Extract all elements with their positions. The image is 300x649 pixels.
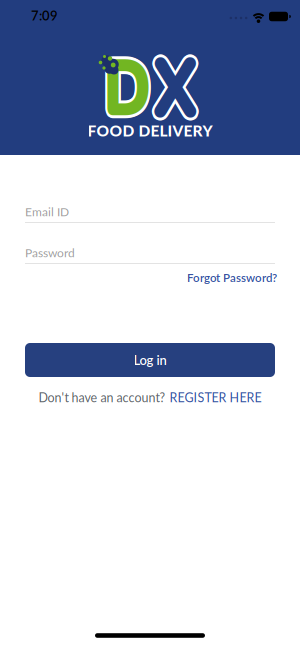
staticText: D: [98, 37, 161, 146]
button[interactable]: Forgot Password?: [187, 271, 277, 284]
staticText: D: [96, 34, 159, 143]
staticText: X: [148, 31, 206, 144]
staticText: X: [146, 36, 204, 150]
button[interactable]: Log in: [25, 343, 275, 377]
staticText: X: [143, 33, 201, 147]
staticText: REGISTER HERE: [169, 390, 261, 405]
staticText: D: [96, 31, 159, 140]
staticText: Forgot Password?: [187, 271, 277, 284]
staticText: D: [94, 37, 157, 146]
staticText: D: [98, 32, 161, 141]
staticText: D: [96, 37, 159, 146]
staticText: Log in: [133, 352, 166, 368]
button[interactable]: REGISTER HERE: [169, 390, 261, 405]
staticText: FOOD DELIVERY: [87, 121, 212, 140]
staticText: Don't have an account?: [38, 390, 165, 405]
staticText: X: [149, 33, 207, 147]
staticText: X: [144, 31, 202, 144]
staticText: D: [93, 34, 156, 143]
staticText: 7:09: [31, 8, 58, 23]
staticText: D: [94, 32, 157, 141]
staticText: Password: [25, 245, 75, 260]
staticText: Email ID: [25, 204, 69, 219]
staticText: D: [99, 34, 162, 143]
staticText: X: [146, 33, 204, 147]
staticText: X: [146, 30, 204, 144]
staticText: X: [148, 35, 206, 149]
staticText: X: [144, 35, 202, 149]
